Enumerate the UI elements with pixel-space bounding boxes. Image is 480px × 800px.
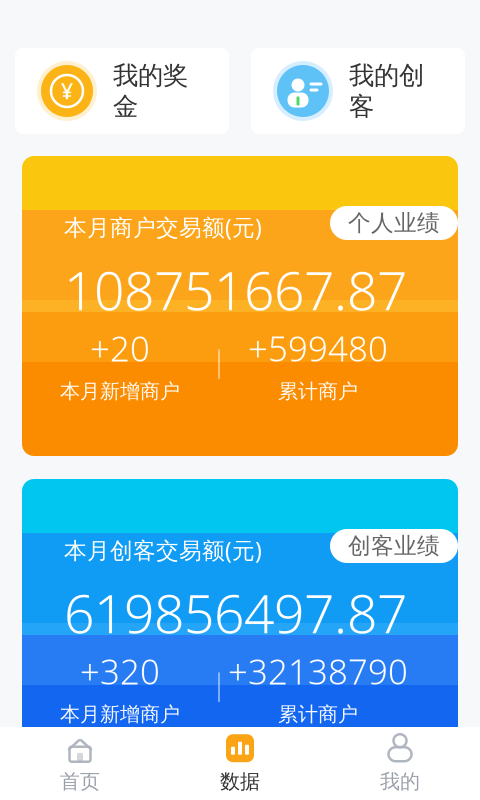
button[interactable]: 我的创客 [251, 48, 465, 134]
staticText: 个人业绩 [348, 209, 440, 237]
staticText: 累计商户 [278, 379, 358, 404]
staticText: +32138790 [228, 648, 408, 694]
staticText: +599480 [248, 325, 388, 371]
button[interactable]: 个人业绩 [330, 206, 458, 240]
button[interactable]: ¥ [15, 48, 229, 134]
staticText: 数据 [220, 769, 260, 794]
staticText: 108751667.87 [64, 254, 407, 325]
staticText: 本月创客交易额(元) [64, 535, 262, 565]
staticText: +320 [80, 648, 160, 694]
button[interactable]: 首页 [0, 727, 160, 800]
staticText: 本月新增商户 [60, 702, 180, 727]
staticText: 本月新增商户 [60, 379, 180, 404]
staticText: 本月商户交易额(元) [64, 212, 262, 242]
staticText: 我的 [380, 769, 420, 794]
staticText: 创客业绩 [348, 532, 440, 560]
staticText: ¥ [61, 77, 73, 105]
button[interactable]: 我的 [320, 727, 480, 800]
staticText: 我的奖金 [113, 60, 188, 122]
staticText: 619856497.87 [64, 577, 407, 648]
staticText: 首页 [60, 769, 100, 794]
button[interactable]: 创客业绩 [330, 529, 458, 563]
staticText: +20 [90, 325, 150, 371]
staticText: 我的创客 [349, 60, 424, 122]
staticText: 累计商户 [278, 702, 358, 727]
button[interactable]: 数据 [160, 727, 320, 800]
